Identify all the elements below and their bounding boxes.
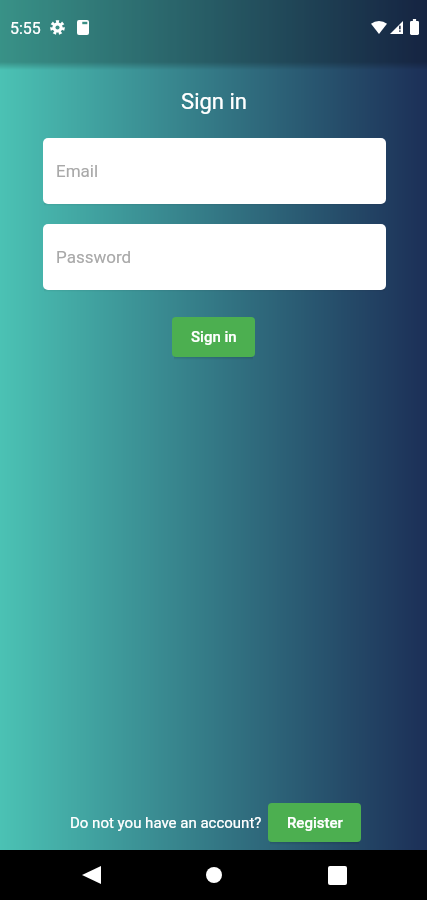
staticText: Email bbox=[56, 161, 99, 181]
staticText: Do not you have an account? bbox=[70, 814, 262, 832]
button[interactable]: Register bbox=[268, 803, 361, 842]
button[interactable]: Recent apps bbox=[307, 850, 367, 900]
staticText: Register bbox=[287, 814, 343, 832]
button[interactable]: Password bbox=[43, 224, 386, 290]
staticText: Password bbox=[56, 247, 132, 267]
staticText: Sign in bbox=[191, 328, 237, 346]
button[interactable]: Home bbox=[184, 850, 244, 900]
staticText: 5:55 bbox=[10, 19, 41, 35]
button[interactable]: Sign in bbox=[172, 317, 255, 357]
staticText: Sign in bbox=[181, 89, 247, 115]
button[interactable]: Back bbox=[61, 850, 121, 900]
button[interactable]: Email bbox=[43, 138, 386, 204]
